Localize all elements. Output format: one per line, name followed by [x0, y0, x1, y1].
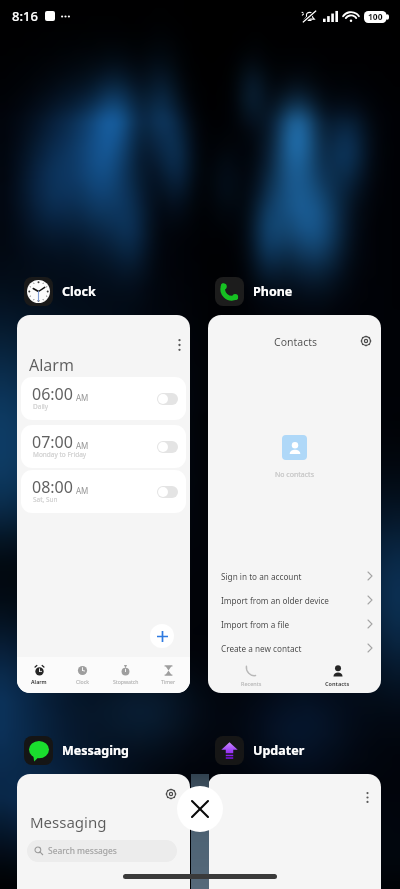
- staticText: Recents: [241, 680, 262, 687]
- button[interactable]: Messaging: [24, 736, 129, 765]
- button[interactable]: More options: [165, 331, 190, 359]
- button[interactable]: Import from a file: [208, 612, 381, 636]
- staticText: Create a new contact: [221, 643, 302, 654]
- button[interactable]: Recents: [208, 659, 294, 693]
- staticText: Search messages: [48, 845, 117, 857]
- staticText: Import from an older device: [221, 595, 329, 606]
- staticText: Contacts: [274, 335, 318, 349]
- staticText: Daily: [33, 402, 49, 411]
- button[interactable]: Stopwatch: [104, 657, 147, 693]
- staticText: AM: [76, 485, 89, 496]
- staticText: Messaging: [30, 812, 107, 832]
- button[interactable]: Phone: [215, 277, 293, 306]
- staticText: AM: [76, 440, 89, 451]
- button[interactable]: Contacts: [294, 659, 381, 693]
- button[interactable]: Settings: [160, 783, 182, 805]
- staticText: Alarm: [31, 678, 47, 685]
- button[interactable]: [157, 441, 178, 453]
- staticText: 08:00: [32, 476, 73, 498]
- staticText: 07:00: [32, 431, 73, 453]
- staticText: Contacts: [325, 680, 350, 687]
- button[interactable]: Close all: [177, 786, 223, 832]
- button[interactable]: Sign in to an account: [208, 564, 381, 588]
- staticText: Messaging: [62, 742, 129, 759]
- button[interactable]: More options: [356, 786, 378, 808]
- staticText: Alarm: [29, 354, 74, 376]
- button[interactable]: Updater: [215, 736, 305, 765]
- button[interactable]: 07:00: [21, 425, 186, 468]
- button[interactable]: More options: [17, 315, 190, 693]
- button[interactable]: Create a new contact: [208, 636, 381, 660]
- staticText: Clock: [62, 283, 96, 300]
- staticText: 100: [368, 11, 383, 23]
- button[interactable]: Import from an older device: [208, 588, 381, 612]
- button[interactable]: 08:00: [21, 470, 186, 513]
- button[interactable]: Clock: [24, 277, 96, 306]
- staticText: Clock: [76, 678, 90, 685]
- staticText: Stopwatch: [113, 678, 139, 685]
- button[interactable]: Clock: [61, 657, 104, 693]
- staticText: No contacts: [275, 470, 314, 480]
- staticText: Sign in to an account: [221, 571, 302, 582]
- staticText: Sat, Sun: [33, 495, 58, 504]
- staticText: Updater: [253, 742, 305, 759]
- button[interactable]: Add alarm: [150, 624, 174, 648]
- staticText: Phone: [253, 283, 293, 300]
- button[interactable]: More options: [208, 774, 381, 889]
- button[interactable]: [157, 393, 178, 405]
- staticText: Monday to Friday: [33, 450, 87, 459]
- button[interactable]: Contacts: [208, 315, 381, 693]
- staticText: Import from a file: [221, 619, 290, 630]
- button[interactable]: Timer: [147, 657, 190, 693]
- button[interactable]: 06:00: [21, 377, 186, 420]
- button[interactable]: Search messages: [27, 840, 177, 862]
- button[interactable]: Settings: [355, 330, 377, 352]
- button[interactable]: Settings: [17, 774, 190, 889]
- button[interactable]: [157, 486, 178, 498]
- staticText: AM: [76, 392, 89, 403]
- button[interactable]: Alarm: [17, 657, 61, 693]
- staticText: 06:00: [32, 383, 73, 405]
- staticText: 8:16: [12, 7, 38, 25]
- staticText: Timer: [161, 678, 176, 685]
